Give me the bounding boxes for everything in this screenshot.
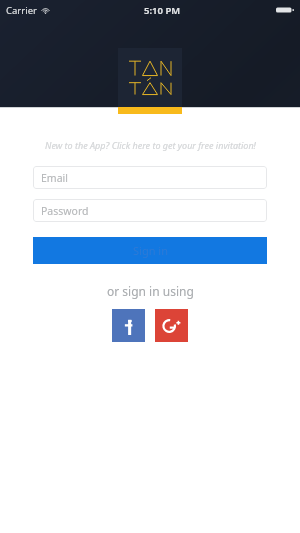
- staticText: or sign in using: [107, 283, 194, 299]
- button[interactable]: Sign in with Google Plus: [155, 309, 188, 342]
- staticText: New to the App? Click here to get your f…: [45, 139, 256, 151]
- staticText: Sign in: [133, 243, 168, 258]
- staticText: 5:10 PM: [144, 4, 181, 17]
- staticText: Password: [41, 204, 89, 218]
- staticText: Email: [41, 171, 68, 185]
- button[interactable]: Sign in with Facebook: [112, 309, 145, 342]
- button[interactable]: Password: [33, 199, 267, 222]
- button[interactable]: New to the App? Click here to get your f…: [14, 139, 286, 151]
- button[interactable]: Email: [33, 166, 267, 189]
- staticText: Carrier: [6, 4, 37, 17]
